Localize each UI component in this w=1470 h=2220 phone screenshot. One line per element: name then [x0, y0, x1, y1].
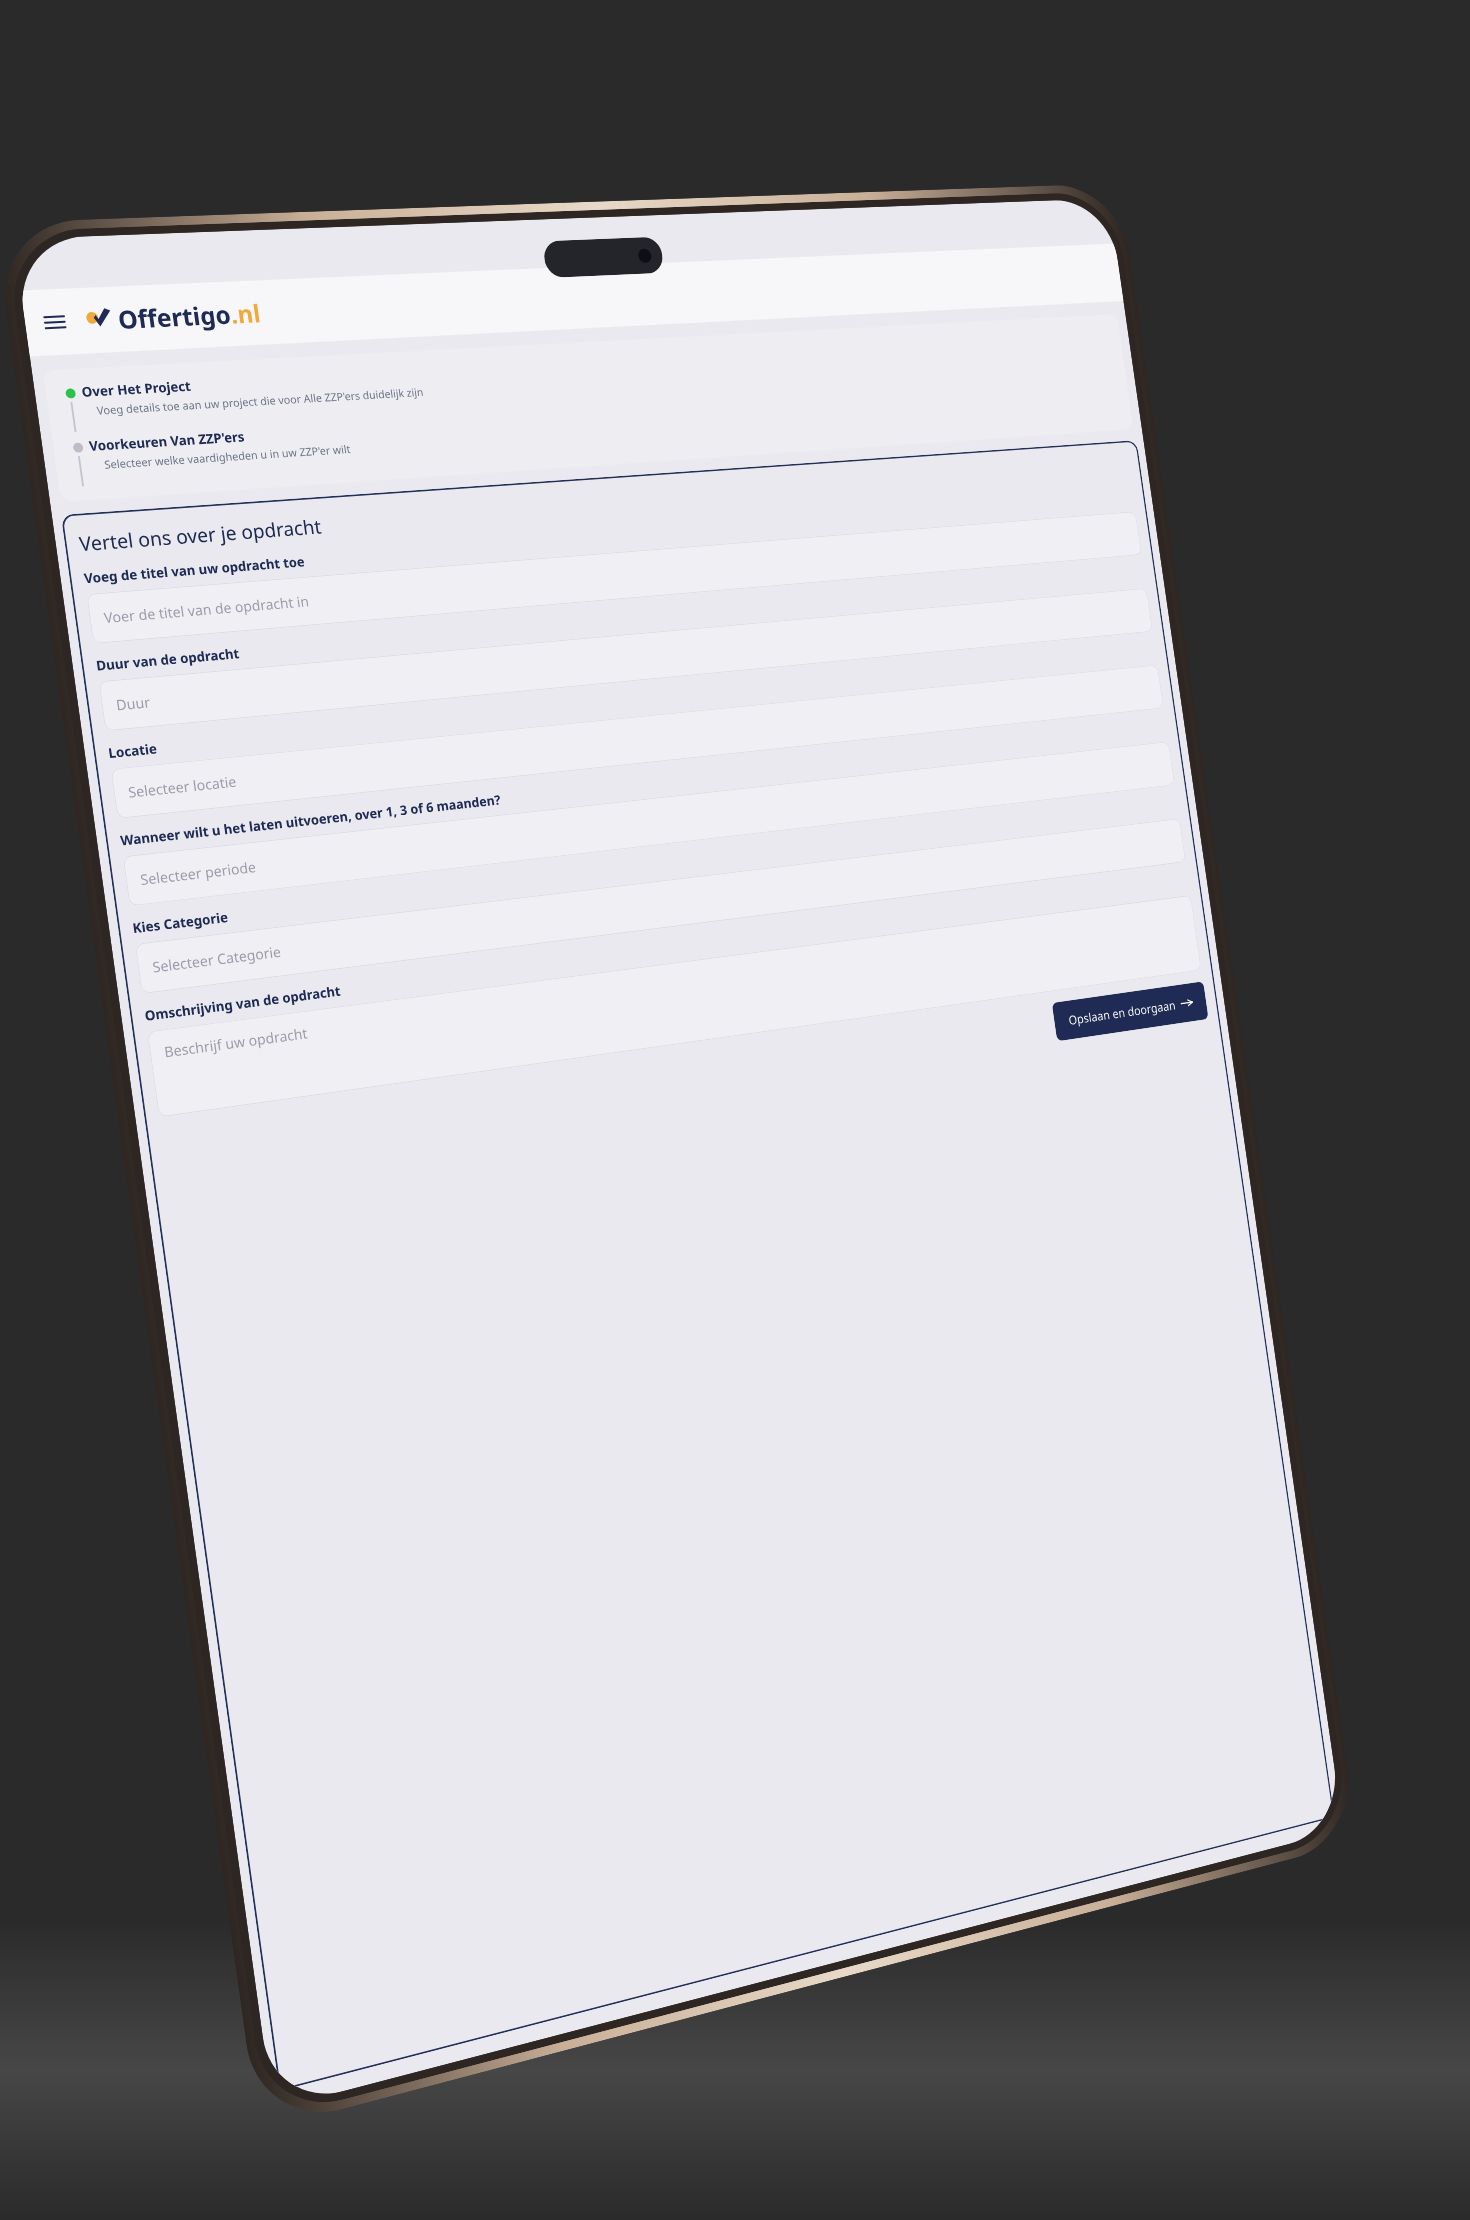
- staticText: Over Het Project: [80, 377, 192, 400]
- staticText: Voeg de titel van uw opdracht toe: [83, 552, 306, 587]
- button[interactable]: Selecteer locatie: [110, 664, 1164, 819]
- button[interactable]: Selecteer Categorie: [135, 818, 1186, 994]
- button[interactable]: Beschrijf uw opdracht: [147, 895, 1202, 1118]
- staticText: Kies Categorie: [131, 908, 229, 937]
- staticText: Duur van de opdracht: [95, 644, 241, 674]
- button[interactable]: Over Het Project: [57, 327, 1115, 433]
- staticText: Wanneer wilt u het laten uitvoeren, over…: [119, 791, 502, 849]
- staticText: Voer de titel van de opdracht in: [103, 591, 311, 628]
- button[interactable]: Selecteer periode: [123, 741, 1175, 906]
- staticText: Selecteer Categorie: [151, 942, 282, 977]
- staticText: Selecteer periode: [139, 857, 257, 890]
- staticText: Offertigo: [116, 297, 233, 336]
- staticText: Voeg details toe aan uw project die voor…: [96, 385, 425, 418]
- staticText: Locatie: [107, 739, 158, 762]
- button[interactable]: Duur: [98, 588, 1153, 731]
- staticText: Vertel ons over je opdracht: [77, 513, 323, 557]
- button[interactable]: Voorkeuren Van ZZP'ers: [65, 374, 1122, 487]
- button[interactable]: Menu: [37, 306, 72, 338]
- staticText: Voorkeuren Van ZZP'ers: [88, 427, 245, 454]
- button[interactable]: Opslaan en doorgaan: [1052, 981, 1209, 1041]
- staticText: Duur: [115, 692, 152, 715]
- staticText: Omschrijving van de opdracht: [143, 981, 342, 1024]
- staticText: Selecteer welke vaardigheden u in uw ZZP…: [103, 442, 351, 472]
- button[interactable]: Voer de titel van de opdracht in: [86, 511, 1142, 644]
- staticText: .nl: [228, 296, 263, 330]
- staticText: Opslaan en doorgaan: [1067, 997, 1177, 1028]
- staticText: Selecteer locatie: [127, 772, 238, 802]
- staticText: Beschrijf uw opdracht: [163, 1023, 309, 1062]
